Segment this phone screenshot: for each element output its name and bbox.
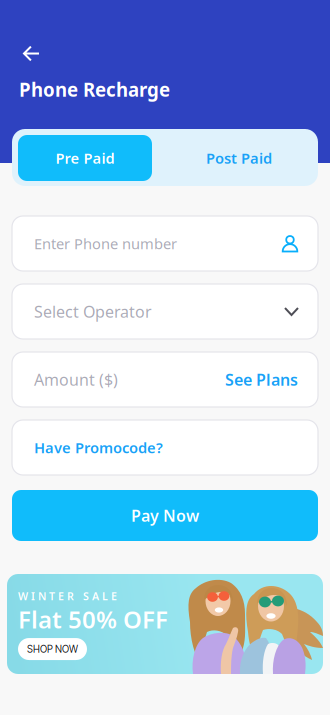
- staticText: Select Operator: [34, 301, 152, 322]
- button[interactable]: Back: [16, 38, 47, 69]
- staticText: Have Promocode?: [34, 438, 163, 457]
- staticText: Phone Recharge: [19, 77, 170, 102]
- button[interactable]: SHOP NOW: [18, 638, 87, 660]
- button[interactable]: Pre Paid: [18, 135, 152, 181]
- staticText: Pay Now: [131, 505, 199, 526]
- staticText: Flat 50% OFF: [18, 603, 168, 635]
- staticText: Enter Phone number: [34, 234, 177, 253]
- staticText: Amount ($): [34, 369, 118, 390]
- staticText: Pre Paid: [55, 148, 114, 168]
- button[interactable]: Pay Now: [12, 490, 318, 541]
- button[interactable]: Post Paid: [152, 135, 312, 181]
- staticText: SHOP NOW: [27, 643, 78, 655]
- staticText: See Plans: [225, 369, 298, 390]
- staticText: W I N T E R S A L E: [18, 589, 117, 603]
- staticText: Post Paid: [206, 148, 272, 168]
